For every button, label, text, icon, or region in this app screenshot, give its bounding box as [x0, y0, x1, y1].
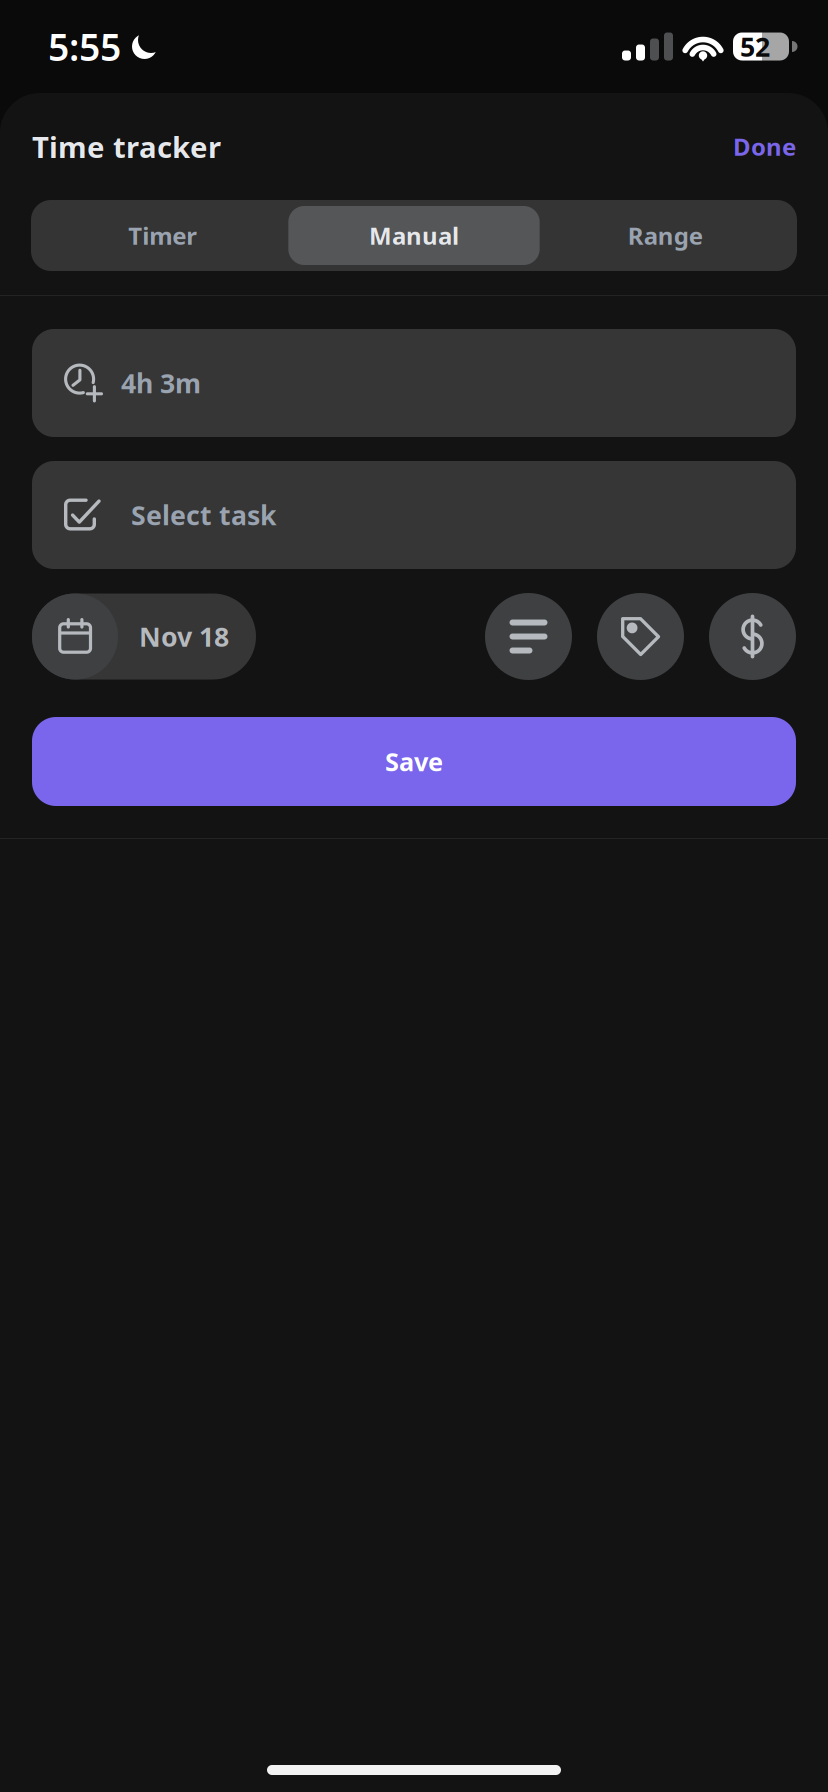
button[interactable]: Manual: [288, 206, 540, 265]
staticText: Select task: [131, 497, 277, 533]
button[interactable]: Notes: [485, 593, 572, 680]
staticText: Done: [733, 131, 796, 162]
button[interactable]: Select task: [32, 461, 796, 569]
button[interactable]: Billable: [709, 593, 796, 680]
button[interactable]: Range: [540, 206, 791, 265]
staticText: Time tracker: [32, 127, 221, 166]
button[interactable]: Done: [733, 131, 796, 162]
staticText: 4h 3m: [121, 365, 201, 401]
staticText: 5:55: [48, 22, 121, 71]
staticText: Manual: [369, 220, 459, 251]
staticText: Timer: [128, 220, 197, 251]
button[interactable]: Tags: [597, 593, 684, 680]
button[interactable]: 4h 3m: [32, 329, 796, 437]
staticText: Nov 18: [139, 619, 229, 654]
button[interactable]: Nov 18: [32, 593, 256, 679]
button[interactable]: Save: [32, 717, 796, 806]
staticText: Save: [385, 745, 443, 778]
staticText: 52: [740, 29, 770, 64]
staticText: Range: [628, 220, 703, 251]
button[interactable]: Timer: [37, 206, 288, 265]
